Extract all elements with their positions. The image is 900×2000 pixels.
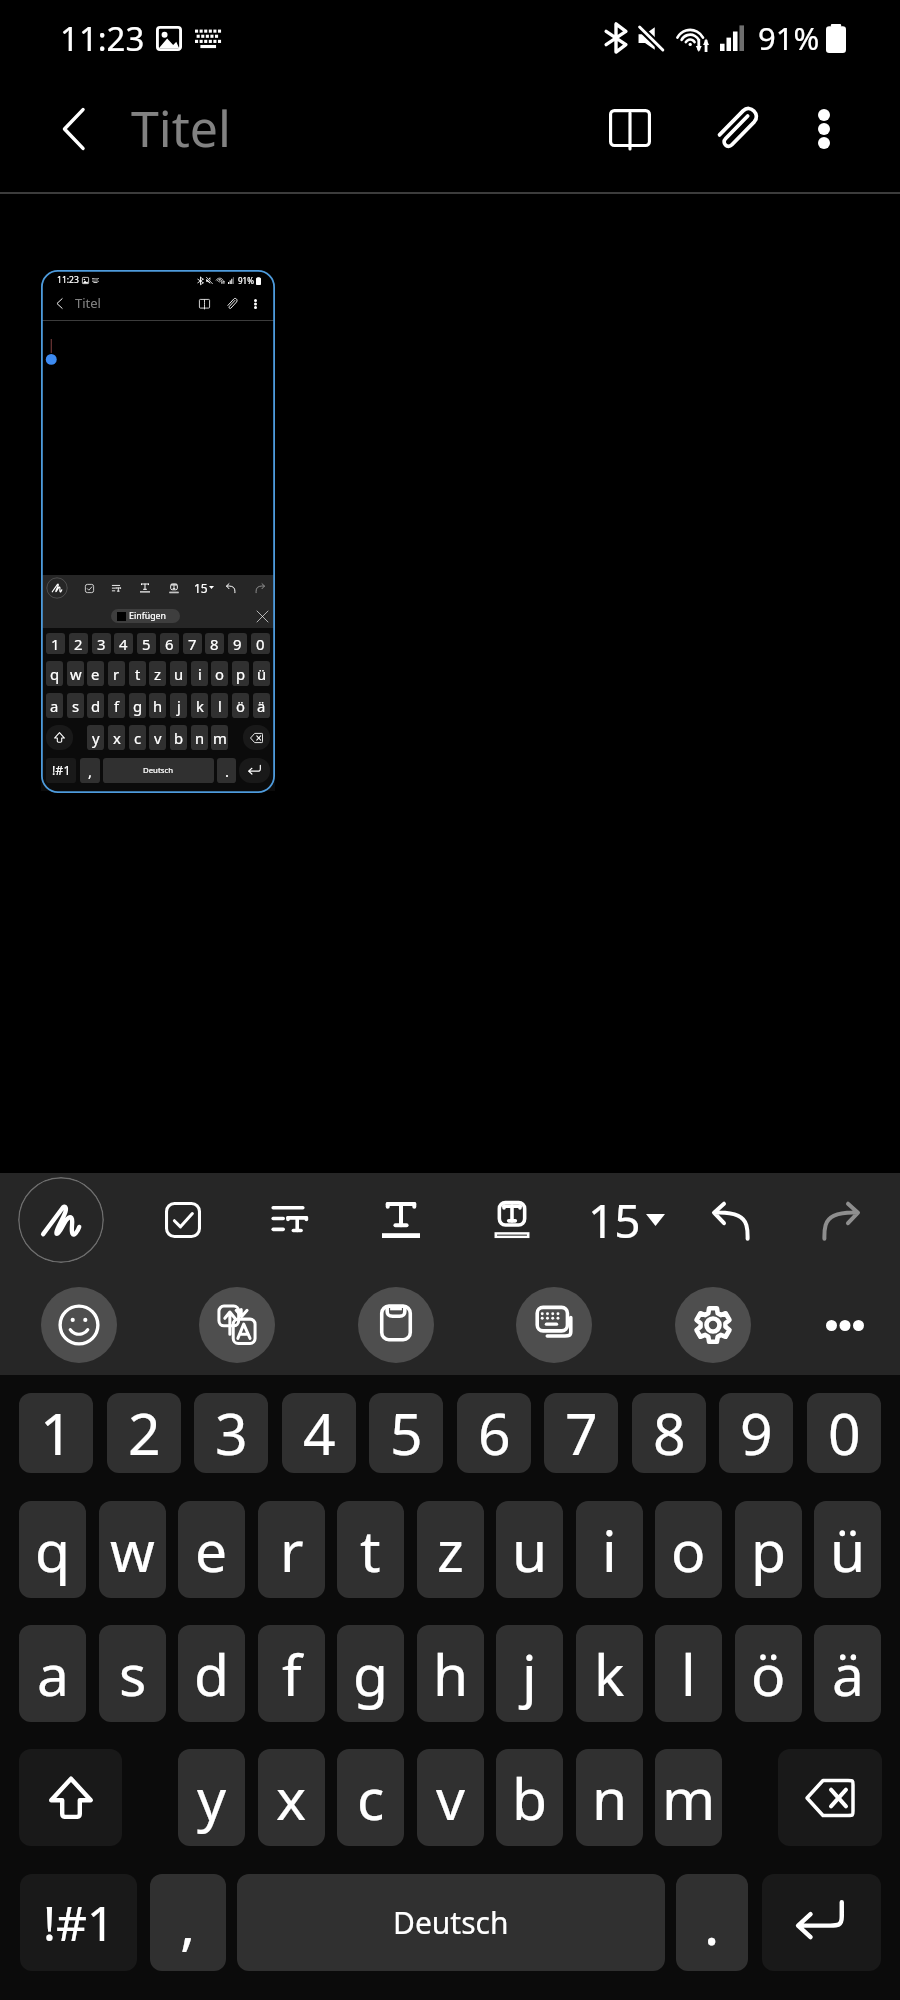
button[interactable]: p [735,1501,802,1598]
button[interactable]: o [211,661,228,686]
button[interactable]: ü [814,1501,881,1598]
button[interactable]: More options [784,89,864,169]
button[interactable]: 4 [114,633,133,654]
button[interactable]: Clipboard [358,1287,434,1363]
button[interactable]: , [150,1874,226,1971]
button[interactable]: z [417,1501,484,1598]
button[interactable]: u [170,661,187,686]
button[interactable]: y [87,725,104,750]
button[interactable]: s [99,1625,166,1722]
button[interactable]: 0 [251,633,270,654]
button[interactable]: h [149,693,166,718]
button[interactable]: 4 [282,1393,356,1473]
button[interactable]: 1 [19,1393,93,1473]
button[interactable]: Translate [199,1287,275,1363]
button[interactable]: 7 [183,633,202,654]
button[interactable]: 0 [807,1393,881,1473]
button[interactable]: 2 [107,1393,181,1473]
button[interactable]: e [178,1501,245,1598]
button[interactable]: !#1 [20,1874,137,1971]
button[interactable]: x [258,1749,325,1846]
button[interactable]: Deutsch [237,1874,665,1971]
button[interactable]: Backspace [243,725,270,750]
button[interactable]: p [232,661,249,686]
button[interactable]: Handwriting [18,1177,104,1263]
button[interactable]: Shift [19,1749,122,1846]
button[interactable]: a [46,693,63,718]
button[interactable]: s [67,693,84,718]
button[interactable]: Undo [694,1182,770,1258]
button[interactable]: h [417,1625,484,1722]
button[interactable]: z [149,661,166,686]
button[interactable]: More [805,1285,885,1365]
button[interactable]: Deutsch [103,758,214,783]
button[interactable]: ö [232,693,249,718]
button[interactable]: 8 [632,1393,706,1473]
button[interactable]: w [67,661,84,686]
button[interactable]: Text style [135,578,155,598]
button[interactable]: g [129,693,146,718]
button[interactable]: ä [814,1625,881,1722]
button[interactable]: Backspace [778,1749,882,1846]
button[interactable]: k [191,693,208,718]
button[interactable]: d [87,693,104,718]
button[interactable]: a [19,1625,86,1722]
button[interactable]: k [576,1625,643,1722]
button[interactable]: Reading mode [194,293,215,314]
button[interactable]: f [258,1625,325,1722]
button[interactable]: Redo [802,1182,878,1258]
button[interactable]: j [170,693,187,718]
button[interactable]: l [211,693,228,718]
button[interactable]: Undo [221,578,241,598]
button[interactable]: ö [735,1625,802,1722]
button[interactable]: v [417,1749,484,1846]
button[interactable]: 6 [160,633,179,654]
button[interactable]: r [258,1501,325,1598]
button[interactable]: Checklist [145,1182,221,1258]
button[interactable]: Handwriting [46,577,68,599]
button[interactable]: t [337,1501,404,1598]
button[interactable]: e [87,661,104,686]
button[interactable]: ä [253,693,270,718]
button[interactable]: Text style [363,1182,439,1258]
button[interactable]: !#1 [46,758,76,783]
button[interactable]: Enter [762,1874,881,1971]
button[interactable]: 6 [457,1393,531,1473]
button[interactable]: y [178,1749,245,1846]
button[interactable]: r [108,661,125,686]
button[interactable]: t [129,661,146,686]
button[interactable]: i [191,661,208,686]
button[interactable]: Settings [675,1287,751,1363]
button[interactable]: 1 [46,633,65,654]
button[interactable]: n [191,725,208,750]
button[interactable]: Attach [698,89,778,169]
button[interactable]: n [576,1749,643,1846]
button[interactable]: u [496,1501,563,1598]
button[interactable]: 9 [228,633,247,654]
button[interactable]: f [108,693,125,718]
button[interactable]: m [211,725,228,750]
button[interactable]: 9 [719,1393,793,1473]
button[interactable]: Close [254,608,271,625]
button[interactable]: 7 [544,1393,618,1473]
button[interactable]: Font size [194,577,214,598]
button[interactable]: l [655,1625,722,1722]
button[interactable]: Paragraph [106,578,126,598]
button[interactable]: . [676,1874,748,1971]
button[interactable]: 2 [69,633,88,654]
button[interactable]: m [655,1749,722,1846]
button[interactable]: d [178,1625,245,1722]
button[interactable]: ü [253,661,270,686]
button[interactable]: o [655,1501,722,1598]
button[interactable]: Keyboard layouts [516,1287,592,1363]
button[interactable]: Einfügen [111,609,180,623]
button[interactable]: Paragraph [250,1182,326,1258]
button[interactable]: Font size [588,1180,665,1260]
button[interactable]: w [99,1501,166,1598]
button[interactable]: b [170,725,187,750]
button[interactable]: Text box [164,578,184,598]
button[interactable]: Emoji [41,1287,117,1363]
button[interactable]: j [496,1625,563,1722]
button[interactable]: More options [245,293,266,314]
button[interactable]: Back [51,295,68,312]
